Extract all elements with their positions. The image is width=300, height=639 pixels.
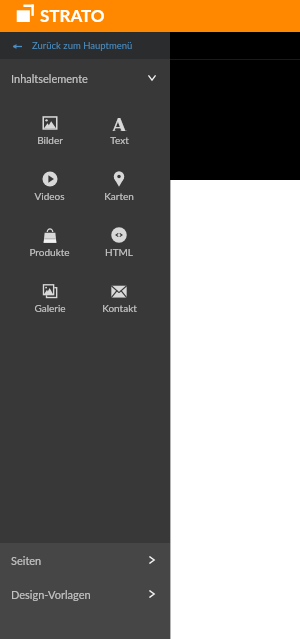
staticText: Zurück zum Hauptmenü <box>32 40 133 51</box>
staticText: Videos <box>34 190 65 202</box>
staticText: Inhaltselemente <box>11 72 88 85</box>
button[interactable]: Videos <box>15 163 84 219</box>
staticText: Seiten <box>11 554 42 567</box>
staticText: Design-Vorlagen <box>11 588 91 601</box>
button[interactable]: Produkte <box>15 219 84 275</box>
button[interactable]: Inhaltselemente <box>0 59 170 97</box>
staticText: Bilder <box>37 134 63 146</box>
button[interactable]: Karten <box>84 163 154 219</box>
staticText: Galerie <box>34 302 66 314</box>
button[interactable]: A <box>84 107 154 163</box>
staticText: Produkte <box>29 246 70 258</box>
staticText: Kontakt <box>102 302 137 314</box>
staticText: A <box>112 115 127 131</box>
button[interactable]: HTML <box>84 219 154 275</box>
staticText: Text <box>110 134 129 146</box>
button[interactable]: Seiten <box>0 543 170 577</box>
staticText: Karten <box>104 190 134 202</box>
button[interactable]: Galerie <box>15 275 84 331</box>
button[interactable]: Zurück zum Hauptmenü <box>0 32 170 59</box>
button[interactable]: Kontakt <box>84 275 154 331</box>
staticText: HTML <box>105 246 133 258</box>
staticText: STRATO <box>40 5 105 25</box>
button[interactable]: Bilder <box>15 107 84 163</box>
button[interactable]: Design-Vorlagen <box>0 577 170 611</box>
other: Abschnitt zuklappen <box>148 75 156 81</box>
